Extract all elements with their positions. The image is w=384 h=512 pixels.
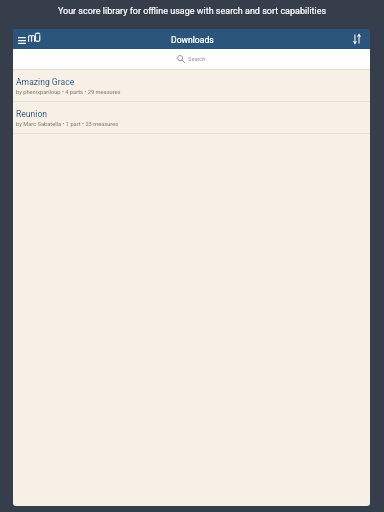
staticText: Amazing Grace [16, 77, 75, 87]
staticText: by Marc Sabatella • 1 part • 23 measures [16, 121, 119, 128]
staticText: Search [188, 56, 206, 63]
button[interactable]: Amazing Grace [13, 70, 370, 101]
button[interactable]: Sort [347, 30, 370, 48]
staticText: by phenixpariloup • 4 parts • 29 measure… [16, 89, 121, 96]
button[interactable]: Search [13, 49, 370, 69]
button[interactable]: Open navigation menu [13, 31, 45, 48]
staticText: Your score library for offline usage wit… [0, 6, 384, 17]
button[interactable]: Reunion [13, 102, 370, 133]
staticText: Downloads [171, 35, 214, 45]
staticText: Reunion [16, 109, 48, 119]
